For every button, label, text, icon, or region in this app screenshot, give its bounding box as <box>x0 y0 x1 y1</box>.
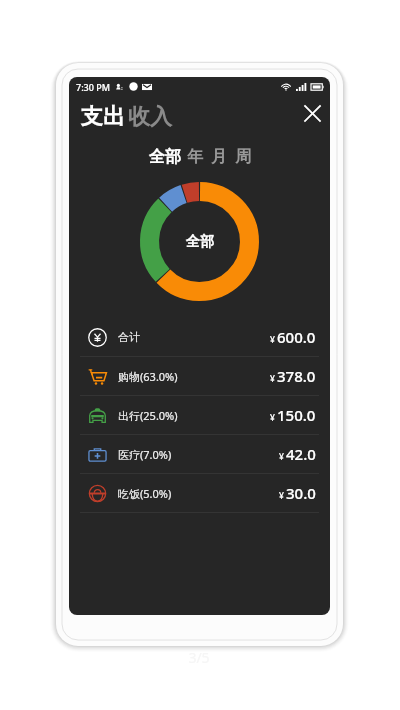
staticText: ¥ <box>270 334 275 346</box>
button[interactable]: 收入 <box>128 103 172 131</box>
staticText: 吃饭(5.0%) <box>118 486 172 501</box>
staticText: 42.0 <box>286 444 316 464</box>
staticText: 购物(63.0%) <box>118 369 178 384</box>
button[interactable]: 医疗(7.0%) <box>80 435 319 473</box>
staticText: 医疗(7.0%) <box>118 447 172 462</box>
button[interactable]: 月 <box>211 147 227 167</box>
staticText: 150.0 <box>277 405 316 425</box>
staticText: ¥ <box>270 373 275 385</box>
button[interactable]: 购物(63.0%) <box>80 357 319 395</box>
button[interactable]: 合计 <box>80 318 319 356</box>
staticText: 600.0 <box>277 327 316 347</box>
staticText: 年 <box>187 147 203 167</box>
button[interactable]: 全部 <box>149 147 181 167</box>
staticText: 收入 <box>128 103 172 131</box>
staticText: 全部 <box>186 233 214 251</box>
staticText: 30.0 <box>286 483 316 503</box>
staticText: 合计 <box>118 330 140 344</box>
button[interactable]: 周 <box>235 147 251 167</box>
button[interactable]: 年 <box>187 147 203 167</box>
staticText: 周 <box>235 147 251 167</box>
button[interactable]: 支出 <box>81 103 125 131</box>
staticText: 378.0 <box>277 366 316 386</box>
staticText: 3/5 <box>179 648 219 667</box>
staticText: ¥ <box>279 490 284 502</box>
button[interactable]: 吃饭(5.0%) <box>80 474 319 512</box>
staticText: 全部 <box>149 147 181 167</box>
staticText: 月 <box>211 147 227 167</box>
staticText: 支出 <box>81 103 125 131</box>
staticText: 出行(25.0%) <box>118 408 178 423</box>
button[interactable]: Close <box>299 100 326 127</box>
staticText: ¥ <box>279 451 284 463</box>
staticText: 7:30 PM <box>76 81 110 93</box>
staticText: ¥ <box>270 412 275 424</box>
button[interactable]: 出行(25.0%) <box>80 396 319 434</box>
